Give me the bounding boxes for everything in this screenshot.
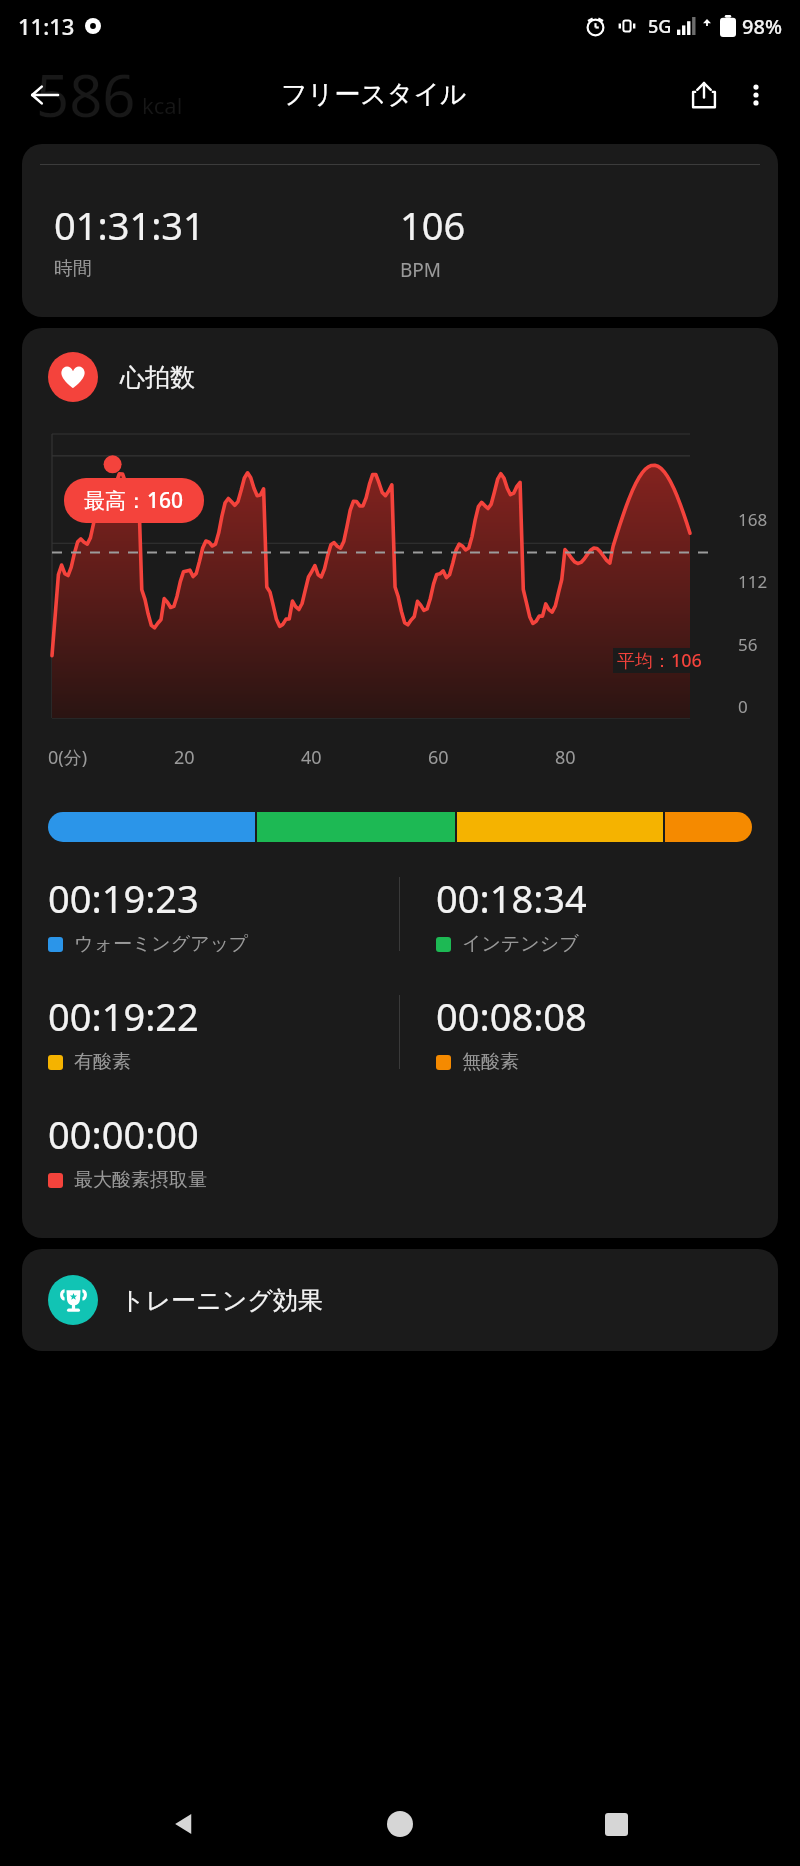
staticText: 20 — [174, 745, 195, 770]
button[interactable]: 01:31:31 — [22, 144, 778, 317]
staticText: kcal — [142, 90, 183, 120]
button[interactable]: 最近のアプリ — [584, 1792, 648, 1856]
staticText: BPM — [400, 257, 442, 283]
staticText: 60 — [428, 745, 449, 770]
staticText: 80 — [555, 745, 576, 770]
staticText: 0 — [738, 695, 748, 718]
staticText: 無酸素 — [462, 1050, 519, 1074]
button[interactable]: その他のオプション — [730, 69, 782, 121]
staticText: 112 — [738, 570, 768, 593]
button[interactable]: 戻る — [152, 1792, 216, 1856]
staticText: 0(分) — [48, 745, 88, 770]
button[interactable]: 戻る — [18, 69, 70, 121]
staticText: 平均：106 — [617, 648, 702, 673]
staticText: トレーニング効果 — [120, 1285, 323, 1316]
staticText: 01:31:31 — [54, 199, 205, 251]
staticText: 00:00:00 — [48, 1108, 199, 1160]
staticText: ウォーミングアップ — [74, 932, 249, 956]
staticText: フリースタイル — [281, 78, 467, 111]
staticText: 00:08:08 — [436, 990, 587, 1042]
staticText: 56 — [738, 633, 758, 656]
staticText: 586 — [36, 55, 136, 134]
staticText: 00:18:34 — [436, 872, 587, 924]
button[interactable]: 心拍数 — [48, 352, 752, 402]
staticText: 心拍数 — [120, 362, 195, 393]
staticText: 00:19:22 — [48, 990, 199, 1042]
staticText: 00:19:23 — [48, 872, 199, 924]
staticText: 時間 — [54, 257, 92, 281]
button[interactable]: トレーニング効果 — [22, 1249, 778, 1351]
staticText: 5G — [648, 14, 672, 39]
staticText: 11:13 — [18, 11, 75, 41]
staticText: 40 — [301, 745, 322, 770]
staticText: 最高：160 — [84, 486, 184, 515]
staticText: 106 — [400, 199, 466, 251]
staticText: 有酸素 — [74, 1050, 131, 1074]
button[interactable]: 共有 — [678, 69, 730, 121]
staticText: 98% — [742, 13, 782, 40]
staticText: 最大酸素摂取量 — [74, 1168, 207, 1192]
staticText: 168 — [738, 508, 768, 531]
staticText: インテンシブ — [462, 932, 579, 956]
button[interactable]: ホーム — [368, 1792, 432, 1856]
